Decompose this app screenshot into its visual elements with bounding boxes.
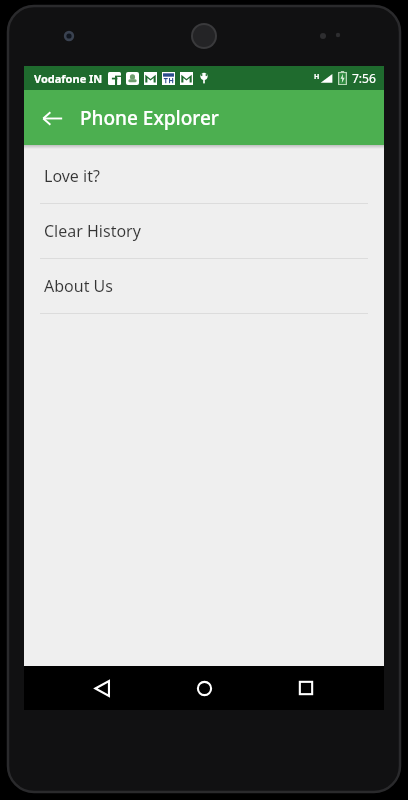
- staticText: About Us: [44, 275, 113, 297]
- button[interactable]: Back: [32, 98, 72, 138]
- staticText: Love it?: [44, 165, 100, 187]
- staticText: 7:56: [352, 70, 376, 86]
- button[interactable]: Recent apps: [282, 666, 330, 710]
- button[interactable]: Home: [180, 666, 228, 710]
- staticText: Phone Explorer: [80, 105, 219, 131]
- button[interactable]: Back: [78, 666, 126, 710]
- staticText: Vodafone IN: [34, 71, 103, 86]
- button[interactable]: Love it?: [24, 149, 384, 204]
- button[interactable]: About Us: [24, 259, 384, 314]
- staticText: H: [314, 72, 320, 82]
- staticText: Clear History: [44, 220, 141, 242]
- button[interactable]: Clear History: [24, 204, 384, 259]
